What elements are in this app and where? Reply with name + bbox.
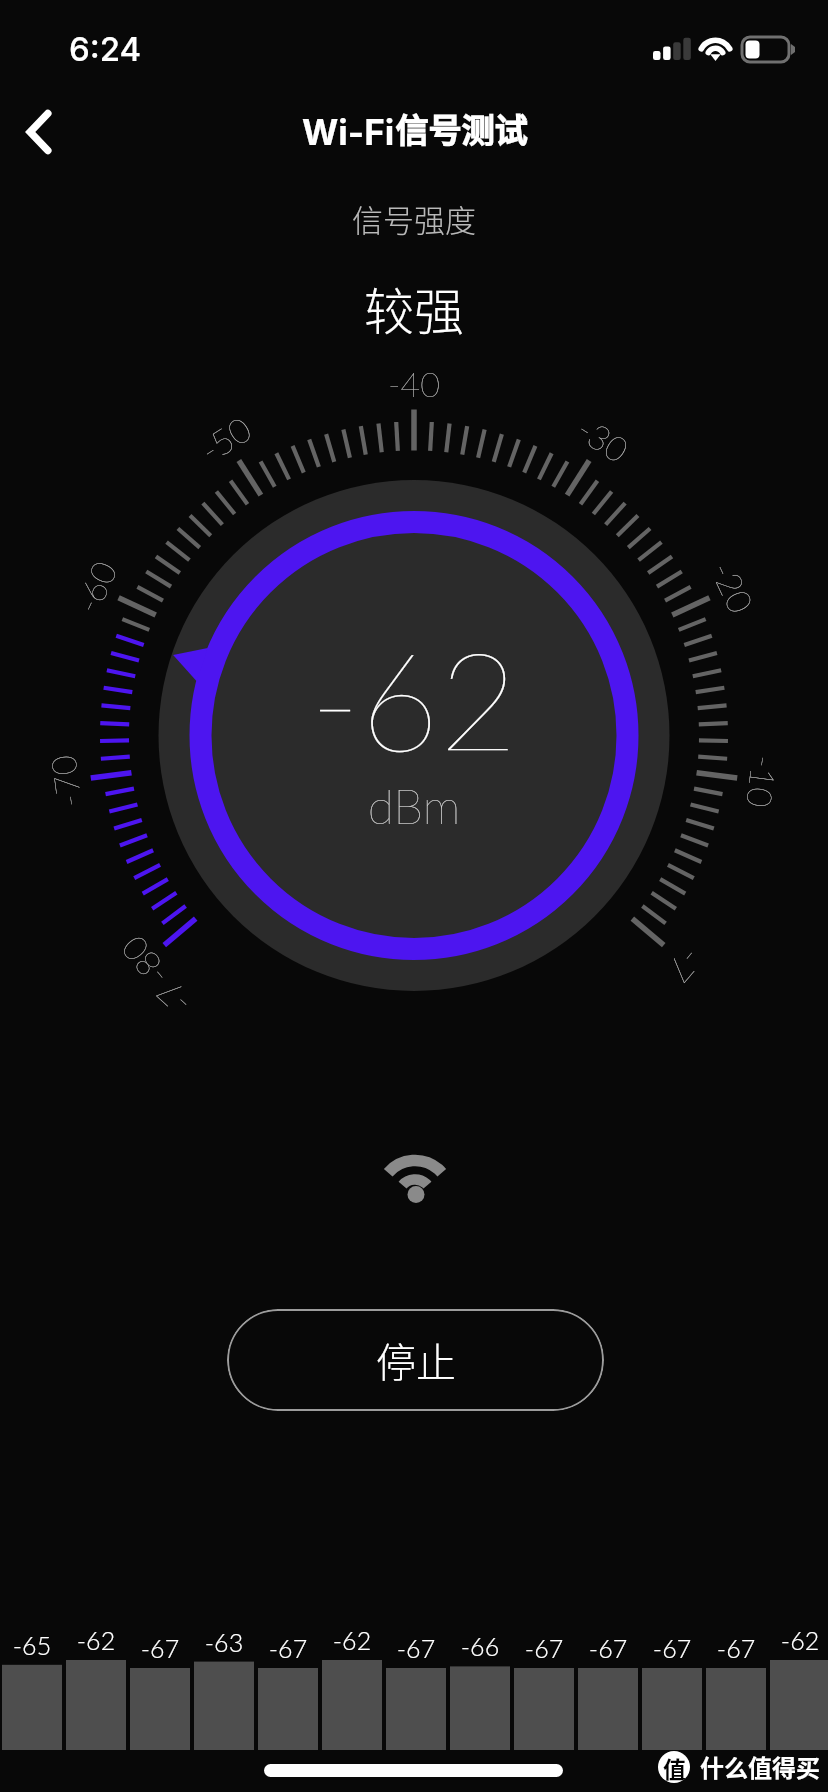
staticText: -67 — [514, 1633, 574, 1663]
staticText: -67 — [706, 1633, 766, 1663]
staticText: dBm — [0, 777, 828, 835]
staticText: -67 — [578, 1633, 638, 1663]
button[interactable]: 停止 — [227, 1309, 604, 1411]
staticText: -62 — [322, 1625, 382, 1655]
staticText: -65 — [2, 1630, 62, 1660]
button[interactable]: Back — [7, 100, 71, 164]
staticText: 什么值得买 — [700, 1749, 820, 1784]
staticText: -67 — [258, 1633, 318, 1663]
staticText: -62 — [770, 1625, 828, 1655]
staticText: 信号测试 — [395, 105, 527, 153]
staticText: 信号强度 — [0, 196, 828, 241]
staticText: 值 — [663, 1751, 686, 1783]
staticText: -62 — [66, 1625, 126, 1655]
staticText: -66 — [450, 1631, 510, 1661]
staticText: -67 — [642, 1633, 702, 1663]
staticText: -67 — [130, 1633, 190, 1663]
staticText: -67 — [386, 1633, 446, 1663]
staticText: 6:24 — [69, 29, 142, 69]
staticText: -62 — [0, 617, 828, 780]
staticText: 停止 — [376, 1331, 456, 1389]
staticText: 较强 — [0, 272, 828, 344]
staticText: -63 — [194, 1627, 254, 1657]
staticText: Wi-Fi — [302, 111, 395, 153]
